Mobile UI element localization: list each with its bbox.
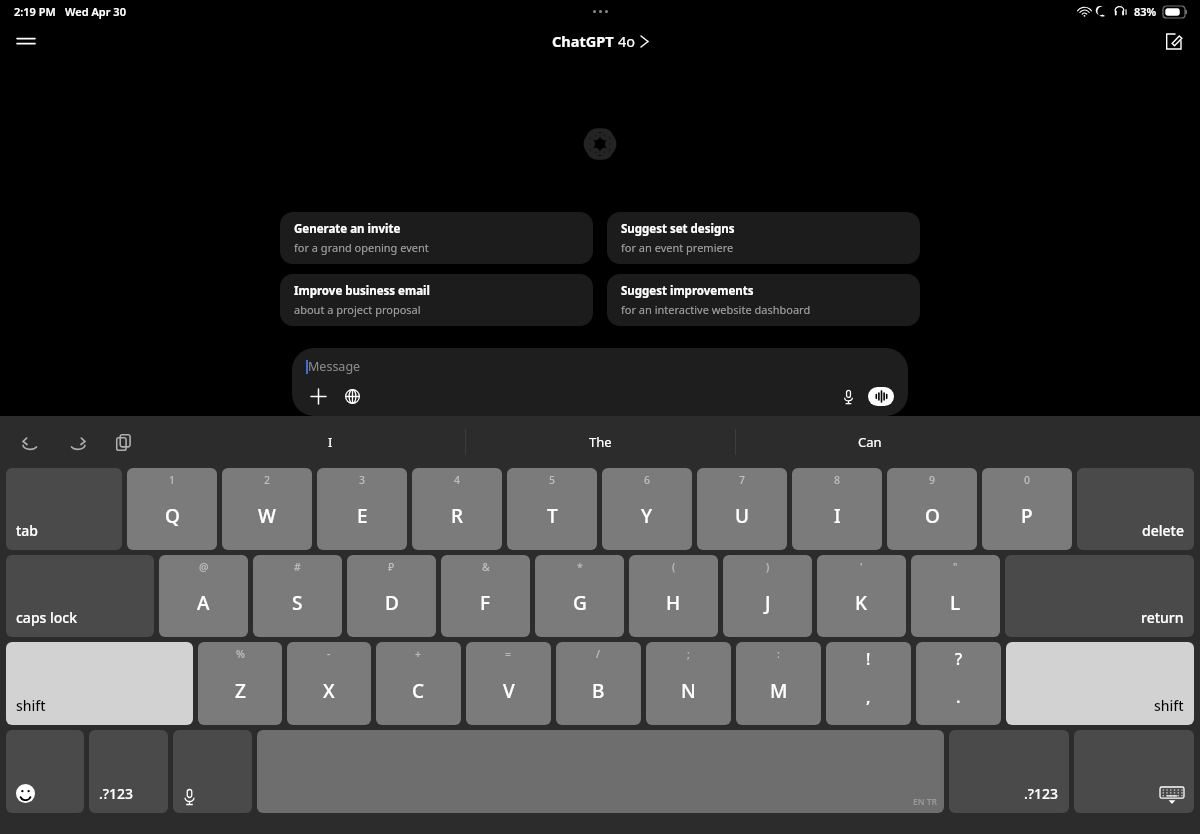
button[interactable]: Message xyxy=(292,348,908,416)
staticText: I xyxy=(834,503,841,529)
button[interactable]: I xyxy=(265,416,395,468)
button[interactable]: 1 xyxy=(127,468,217,550)
staticText: B xyxy=(592,678,605,704)
button[interactable]: Suggest set designs xyxy=(607,212,920,264)
staticText: ChatGPT xyxy=(552,31,614,51)
staticText: + xyxy=(415,647,422,661)
button[interactable]: + xyxy=(376,642,461,725)
button[interactable]: Menu xyxy=(8,23,44,59)
button[interactable]: ( xyxy=(629,555,718,637)
staticText: K xyxy=(855,590,868,616)
button[interactable]: Paste xyxy=(108,427,138,457)
staticText: tab xyxy=(16,521,39,540)
button[interactable]: Can xyxy=(805,416,935,468)
staticText: EN TR xyxy=(913,796,937,808)
staticText: O xyxy=(925,503,940,529)
staticText: P xyxy=(1021,503,1033,529)
button[interactable]: ₽ xyxy=(347,555,436,637)
staticText: Z xyxy=(235,678,246,704)
staticText: ) xyxy=(766,560,770,574)
button[interactable]: Redo xyxy=(62,427,92,457)
button[interactable]: Attach xyxy=(306,387,330,406)
staticText: : xyxy=(777,647,780,661)
button[interactable]: The xyxy=(535,416,665,468)
staticText: T xyxy=(547,503,558,529)
button[interactable]: New chat xyxy=(1156,24,1190,58)
button[interactable]: % xyxy=(198,642,282,725)
button[interactable]: Dictation xyxy=(173,730,252,813)
staticText: " xyxy=(953,560,958,574)
button[interactable]: shift xyxy=(1006,642,1194,725)
staticText: M xyxy=(770,678,788,704)
staticText: 4 xyxy=(454,473,461,487)
button[interactable]: ; xyxy=(646,642,731,725)
staticText: .?123 xyxy=(99,784,134,803)
button[interactable]: delete xyxy=(1077,468,1194,550)
staticText: for an interactive website dashboard xyxy=(621,302,811,317)
button[interactable]: 5 xyxy=(507,468,597,550)
staticText: Suggest improvements xyxy=(621,283,754,299)
button[interactable]: 7 xyxy=(697,468,787,550)
button[interactable]: ) xyxy=(723,555,812,637)
staticText: F xyxy=(480,590,491,616)
button[interactable]: shift xyxy=(6,642,193,725)
button[interactable]: Suggest improvements xyxy=(607,274,920,326)
button[interactable]: - xyxy=(287,642,371,725)
staticText: C xyxy=(412,678,425,704)
other: Emoji xyxy=(16,784,35,803)
button[interactable]: Undo xyxy=(16,427,46,457)
button[interactable]: Generate an invite xyxy=(280,212,593,264)
button[interactable]: / xyxy=(556,642,641,725)
staticText: 3 xyxy=(359,473,366,487)
button[interactable]: 0 xyxy=(982,468,1072,550)
staticText: return xyxy=(1141,608,1184,627)
staticText: G xyxy=(573,590,587,616)
button[interactable]: 3 xyxy=(317,468,407,550)
button[interactable]: ChatGPT xyxy=(552,31,648,51)
staticText: ? xyxy=(955,648,963,670)
button[interactable]: Hide keyboard xyxy=(1074,730,1194,813)
button[interactable]: tab xyxy=(6,468,122,550)
button[interactable]: 8 xyxy=(792,468,882,550)
button[interactable]: Dictate xyxy=(836,387,860,406)
button[interactable]: & xyxy=(441,555,530,637)
button[interactable]: ? xyxy=(916,642,1001,725)
staticText: 8 xyxy=(834,473,841,487)
staticText: 1 xyxy=(169,473,176,487)
button[interactable]: .?123 xyxy=(89,730,168,813)
button[interactable]: = xyxy=(466,642,551,725)
button[interactable]: Emoji xyxy=(6,730,84,813)
button[interactable]: ! xyxy=(826,642,911,725)
button[interactable]: Browse web xyxy=(340,387,364,406)
staticText: shift xyxy=(1154,696,1184,715)
staticText: Can xyxy=(858,433,882,451)
button[interactable]: 2 xyxy=(222,468,312,550)
staticText: Improve business email xyxy=(294,283,430,299)
button[interactable]: caps lock xyxy=(6,555,154,637)
staticText: W xyxy=(258,503,276,529)
button[interactable]: Voice mode xyxy=(868,387,894,406)
staticText: Suggest set designs xyxy=(621,221,735,237)
button[interactable]: 6 xyxy=(602,468,692,550)
staticText: & xyxy=(482,560,490,574)
button[interactable]: ' xyxy=(817,555,906,637)
other: Dictation xyxy=(182,789,197,805)
staticText: 5 xyxy=(549,473,556,487)
button[interactable]: @ xyxy=(159,555,248,637)
staticText: Y xyxy=(641,503,653,529)
staticText: / xyxy=(596,647,601,661)
button[interactable]: # xyxy=(253,555,342,637)
staticText: 2:19 PM xyxy=(14,4,56,19)
button[interactable]: Improve business email xyxy=(280,274,593,326)
button[interactable]: * xyxy=(535,555,624,637)
button[interactable]: .?123 xyxy=(949,730,1069,813)
button[interactable]: 4 xyxy=(412,468,502,550)
button[interactable]: 9 xyxy=(887,468,977,550)
button[interactable]: return xyxy=(1005,555,1194,637)
staticText: R xyxy=(451,503,464,529)
staticText: ₽ xyxy=(388,560,395,574)
button[interactable]: : xyxy=(736,642,821,725)
staticText: A xyxy=(197,590,210,616)
button[interactable]: " xyxy=(911,555,1000,637)
